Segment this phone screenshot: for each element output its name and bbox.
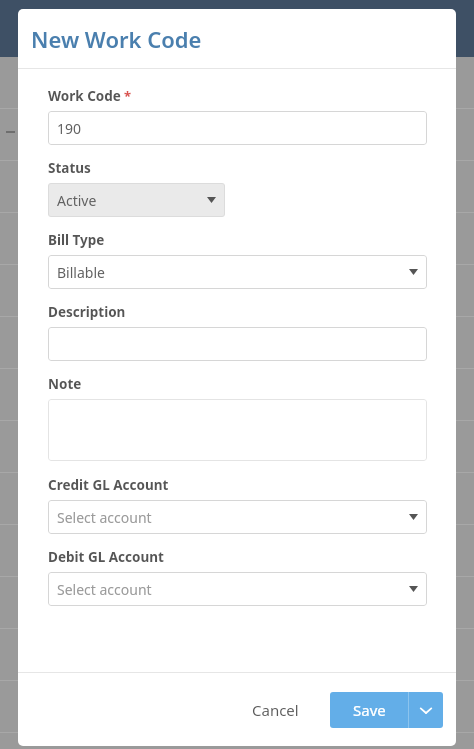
button[interactable]: Save xyxy=(330,692,408,728)
button[interactable] xyxy=(48,327,427,361)
staticText: Select account xyxy=(57,508,152,527)
staticText: Status xyxy=(48,159,91,177)
button[interactable]: Select account xyxy=(48,572,427,606)
button[interactable] xyxy=(48,399,427,461)
button[interactable]: Cancel xyxy=(240,692,311,728)
staticText: 190 xyxy=(57,119,82,138)
button[interactable]: Billable xyxy=(48,255,427,289)
staticText: Note xyxy=(48,375,82,393)
staticText: Debit GL Account xyxy=(48,548,164,566)
staticText: Bill Type xyxy=(48,231,105,249)
staticText: Save xyxy=(353,700,386,720)
staticText: Active xyxy=(57,191,97,210)
staticText: Work Code xyxy=(48,87,121,105)
button[interactable]: Active xyxy=(48,183,225,217)
staticText: Cancel xyxy=(252,700,299,720)
button[interactable]: Select account xyxy=(48,500,427,534)
button[interactable]: More save options xyxy=(409,692,443,728)
staticText: * xyxy=(124,87,132,105)
staticText: Select account xyxy=(57,580,152,599)
button[interactable]: 190 xyxy=(48,111,427,145)
staticText: Credit GL Account xyxy=(48,476,169,494)
staticText: Description xyxy=(48,303,126,321)
staticText: New Work Code xyxy=(31,24,202,54)
staticText: Billable xyxy=(57,263,105,282)
